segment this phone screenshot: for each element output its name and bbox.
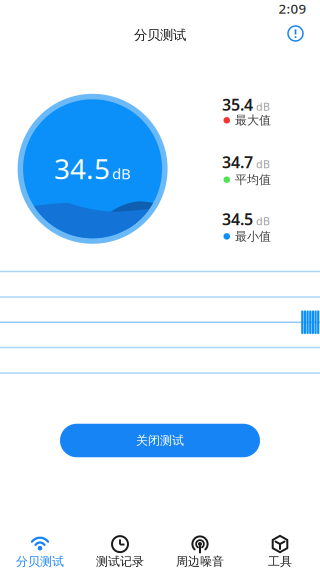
button[interactable]: 关闭测试 — [60, 424, 260, 457]
staticText: 34.5 — [54, 150, 110, 187]
staticText: 2:09 — [278, 0, 306, 17]
staticText: 分贝测试 — [16, 554, 64, 569]
staticText: 最小值 — [235, 229, 271, 244]
button[interactable]: 说明 — [286, 24, 304, 42]
staticText: 34.7 — [222, 151, 253, 173]
staticText: 35.4 — [222, 94, 253, 115]
staticText: 最大值 — [235, 113, 271, 128]
staticText: 34.5 — [222, 208, 253, 230]
staticText: dB — [112, 164, 131, 183]
button[interactable]: 分贝测试 — [0, 527, 80, 569]
staticText: dB — [256, 99, 270, 114]
button[interactable]: 工具 — [240, 527, 320, 569]
staticText: 关闭测试 — [136, 433, 184, 448]
button[interactable]: 周边噪音 — [160, 527, 240, 569]
staticText: 周边噪音 — [176, 554, 224, 569]
staticText: 工具 — [268, 554, 292, 569]
staticText: 测试记录 — [96, 554, 144, 569]
staticText: dB — [256, 214, 270, 228]
button[interactable]: 测试记录 — [80, 527, 160, 569]
staticText: dB — [256, 157, 270, 171]
staticText: 平均值 — [235, 172, 271, 187]
staticText: 分贝测试 — [134, 27, 186, 43]
